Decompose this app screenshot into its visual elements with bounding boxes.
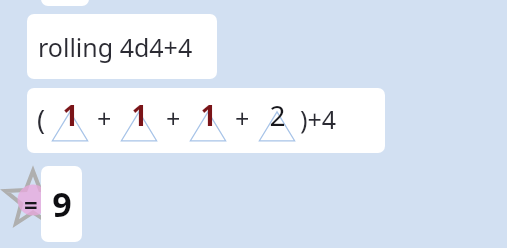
staticText: 1 (62, 96, 79, 134)
staticText: 9 (52, 181, 72, 227)
staticText: + (235, 101, 250, 135)
staticText: rolling 4d4+4 (38, 30, 193, 64)
staticText: 2 (269, 96, 286, 134)
staticText: )+4 (300, 102, 337, 136)
button[interactable]: rolling 4d4+4 (27, 14, 217, 79)
button[interactable]: ( (27, 88, 385, 153)
button[interactable]: 9 (41, 166, 82, 242)
staticText: + (166, 101, 181, 135)
other: d4 showing 1 (50, 98, 90, 144)
other: d4 showing 1 (188, 98, 228, 144)
button[interactable] (41, 0, 89, 6)
staticText: ( (37, 101, 46, 138)
other: d4 showing 1 (119, 98, 159, 144)
staticText: + (97, 101, 112, 135)
other: d4 showing 2 (257, 98, 297, 144)
staticText: 1 (131, 96, 148, 134)
staticText: = (24, 188, 38, 221)
staticText: 1 (200, 96, 217, 134)
